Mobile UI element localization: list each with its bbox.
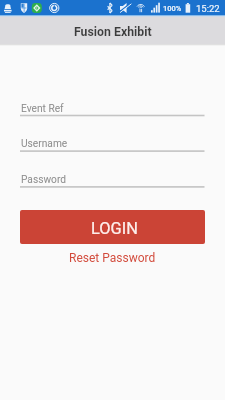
staticText: 15:22 [196, 3, 220, 14]
staticText: Fusion Exhibit [74, 25, 152, 39]
staticText: LOGIN [91, 219, 138, 238]
other: Status bar [0, 0, 225, 17]
button[interactable]: Event Ref [20, 96, 205, 118]
button[interactable]: LOGIN [20, 210, 205, 244]
button[interactable]: Username [20, 131, 205, 153]
staticText: Password [21, 174, 66, 186]
staticText: Username [21, 138, 68, 150]
staticText: Event Ref [21, 103, 64, 115]
button[interactable]: Reset Password [69, 251, 156, 265]
button[interactable]: Password [20, 167, 205, 189]
button[interactable]: Fusion Exhibit [0, 17, 225, 44]
staticText: 100% [163, 4, 182, 13]
